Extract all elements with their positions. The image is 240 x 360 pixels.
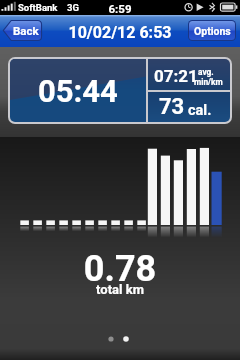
button[interactable]: Options bbox=[189, 21, 235, 40]
staticText: min/km bbox=[194, 77, 223, 87]
staticText: 10/02/12 6:53 bbox=[0, 23, 240, 42]
staticText: 73 bbox=[159, 94, 185, 120]
staticText: Back bbox=[13, 24, 39, 37]
staticText: 05:44 bbox=[38, 73, 118, 109]
staticText: SoftBank bbox=[18, 2, 58, 13]
button[interactable]: 05:44 bbox=[10, 59, 230, 122]
button[interactable]: Back bbox=[3, 20, 42, 41]
staticText: total km bbox=[0, 282, 240, 297]
staticText: 3G bbox=[67, 2, 79, 13]
staticText: Options bbox=[194, 25, 231, 37]
staticText: 07:21 bbox=[154, 66, 198, 86]
staticText: 6:59 bbox=[0, 2, 240, 15]
staticText: avg. bbox=[198, 67, 214, 77]
staticText: 0.78 bbox=[0, 248, 240, 290]
staticText: cal. bbox=[188, 102, 212, 119]
